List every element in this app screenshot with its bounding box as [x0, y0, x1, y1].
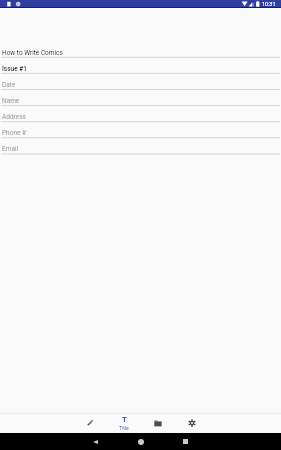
button[interactable]: Settings — [175, 413, 209, 433]
staticText: Title — [119, 425, 129, 431]
button[interactable]: Home — [118, 433, 163, 450]
button[interactable]: Issue #1 — [0, 58, 281, 74]
button[interactable]: How to Write Comics — [0, 42, 281, 58]
staticText: Issue #1 — [2, 65, 27, 73]
staticText: T — [122, 415, 127, 424]
button[interactable]: Email — [0, 138, 281, 154]
button[interactable]: Recents — [163, 433, 208, 450]
staticText: Phone # — [2, 129, 27, 137]
button[interactable]: Name — [0, 90, 281, 106]
staticText: Date — [2, 81, 16, 89]
staticText: Name — [2, 97, 20, 105]
staticText: Email — [2, 145, 19, 153]
button[interactable]: Address — [0, 106, 281, 122]
button[interactable]: Files — [141, 413, 175, 433]
button[interactable]: T — [107, 413, 141, 433]
staticText: How to Write Comics — [2, 49, 63, 57]
staticText: 10:31 — [262, 1, 276, 7]
button[interactable]: Edit — [73, 413, 107, 433]
button[interactable]: Back — [73, 433, 118, 450]
button[interactable]: Date — [0, 74, 281, 90]
staticText: Address — [2, 113, 26, 121]
button[interactable]: Phone # — [0, 122, 281, 138]
